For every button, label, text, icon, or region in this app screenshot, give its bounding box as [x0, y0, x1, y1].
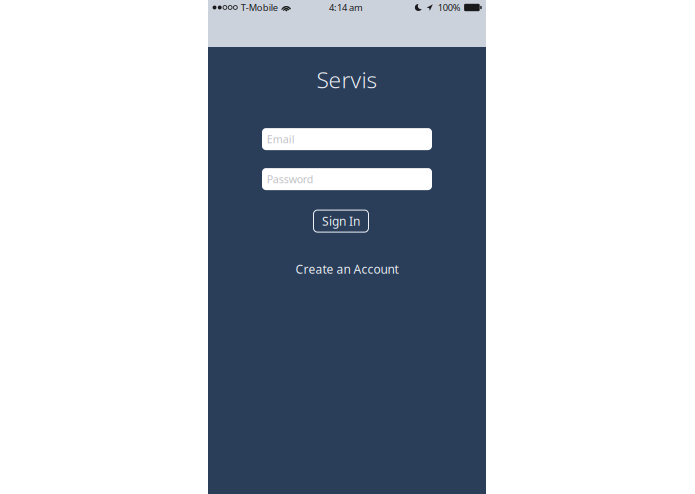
staticText: Password — [267, 172, 314, 186]
button[interactable]: Sign In — [313, 210, 368, 232]
staticText: 4:14 am — [329, 1, 363, 14]
staticText: 100% — [438, 1, 461, 14]
staticText: Create an Account — [295, 261, 398, 277]
staticText: Sign In — [322, 213, 360, 229]
staticText: T-Mobile — [241, 1, 278, 14]
staticText: Email — [267, 132, 295, 146]
button[interactable]: Create an Account — [295, 261, 398, 277]
staticText: Servis — [316, 64, 377, 95]
